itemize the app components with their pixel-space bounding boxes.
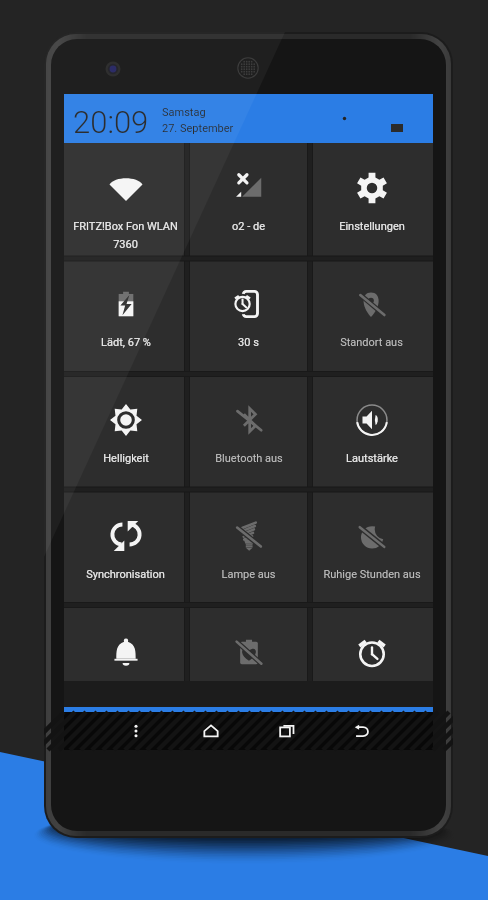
button[interactable]: Recents — [263, 712, 311, 750]
button[interactable]: Lautstärke — [310, 375, 433, 491]
button[interactable] — [187, 607, 310, 681]
button[interactable]: Lampe aus — [187, 491, 310, 607]
staticText: Standort aus — [340, 336, 403, 349]
staticText: 20:09 — [73, 104, 149, 140]
button[interactable]: Bluetooth aus — [187, 375, 310, 491]
button[interactable]: 20:09 — [64, 94, 433, 143]
button[interactable]: Back — [338, 712, 386, 750]
button[interactable]: Home — [187, 712, 235, 750]
button[interactable]: 30 s — [187, 259, 310, 375]
button[interactable]: Standort aus — [310, 259, 433, 375]
button[interactable]: Einstellungen — [310, 143, 433, 259]
staticText: Bluetooth aus — [215, 452, 283, 465]
button[interactable] — [64, 607, 187, 681]
button[interactable] — [310, 607, 433, 681]
staticText: Helligkeit — [103, 452, 149, 465]
staticText: Lautstärke — [346, 452, 398, 465]
staticText: o2 - de — [232, 220, 265, 233]
staticText: Samstag — [162, 106, 206, 119]
staticText: Einstellungen — [339, 220, 405, 233]
button[interactable]: o2 - de — [187, 143, 310, 259]
staticText: Lampe aus — [221, 568, 276, 581]
staticText: 30 s — [238, 336, 259, 349]
staticText: 27. September — [162, 122, 234, 135]
button[interactable]: Helligkeit — [64, 375, 187, 491]
staticText: FRITZ!Box Fon WLAN 7360 — [68, 220, 183, 251]
button[interactable]: Synchronisation — [64, 491, 187, 607]
button[interactable]: FRITZ!Box Fon WLAN 7360 — [64, 143, 187, 259]
button[interactable]: Menu — [112, 712, 160, 750]
button[interactable]: Ruhige Stunden aus — [310, 491, 433, 607]
staticText: Synchronisation — [86, 568, 165, 581]
staticText: Ruhige Stunden aus — [323, 568, 421, 581]
staticText: Lädt, 67 % — [101, 336, 151, 349]
button[interactable]: Lädt, 67 % — [64, 259, 187, 375]
